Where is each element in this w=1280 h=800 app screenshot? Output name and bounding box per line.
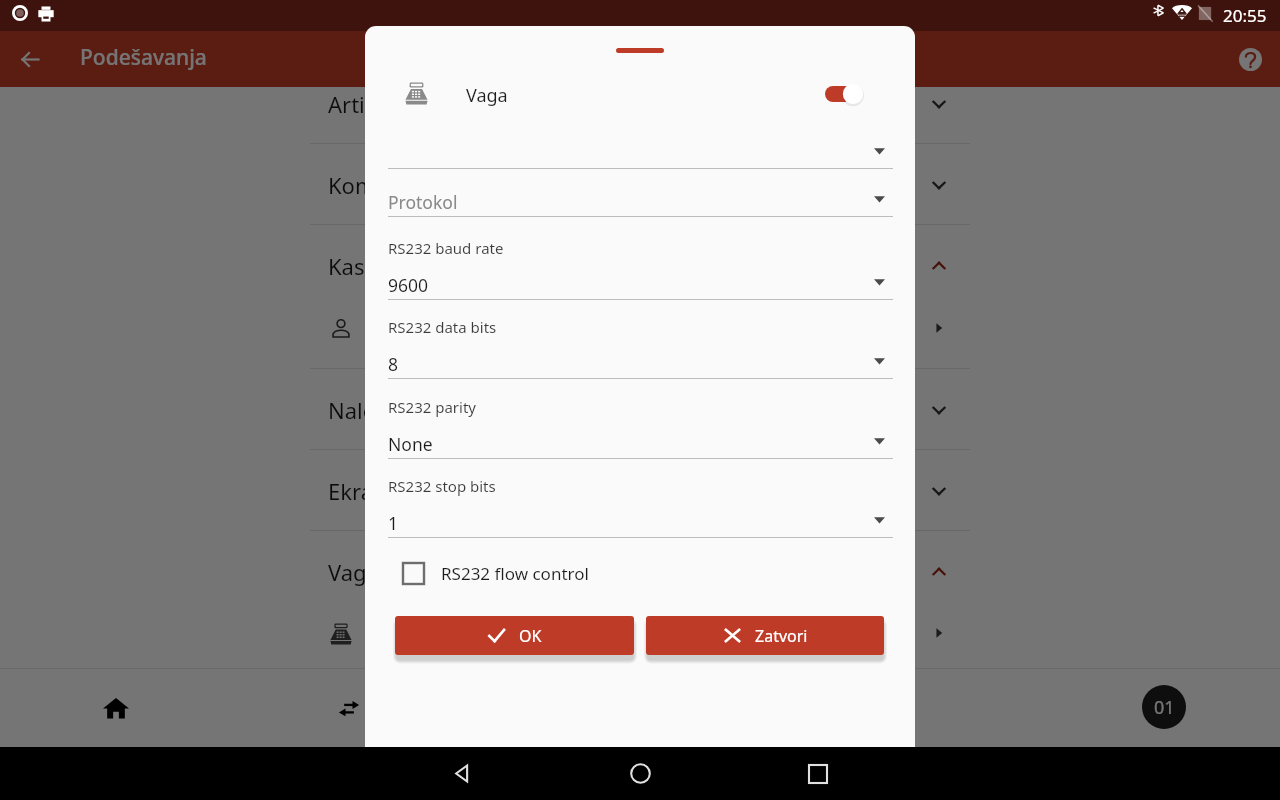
button[interactable]: Kasa	[310, 225, 970, 306]
button[interactable]: Vaga	[310, 531, 970, 612]
staticText: 8	[388, 352, 399, 376]
staticText: Nalog	[328, 395, 390, 425]
staticText: Protokol	[388, 190, 458, 214]
staticText: Kompanija	[328, 170, 439, 200]
button[interactable]	[388, 396, 893, 458]
staticText: RS232 stop bits	[388, 476, 496, 496]
staticText: RS232 baud rate	[388, 238, 504, 258]
button[interactable]	[310, 612, 970, 668]
button[interactable]: Help	[1230, 39, 1270, 79]
staticText: Ekran	[328, 476, 387, 506]
button[interactable]: Ekran	[310, 450, 970, 531]
button[interactable]: Nalog	[310, 369, 970, 450]
staticText: None	[388, 432, 433, 456]
button[interactable]: Home	[92, 684, 140, 732]
button[interactable]	[388, 316, 893, 378]
staticText: Kasa	[328, 251, 377, 281]
button[interactable]: Transfer	[325, 684, 373, 732]
staticText: Zatvori	[755, 625, 808, 647]
button[interactable]: 01	[1142, 685, 1186, 729]
staticText: Podešavanja	[80, 43, 207, 72]
button[interactable]	[388, 475, 893, 537]
button[interactable]: OK	[395, 616, 634, 655]
staticText: RS232 data bits	[388, 317, 497, 337]
staticText: Vaga	[328, 557, 379, 587]
staticText: Vaga	[466, 83, 508, 108]
button[interactable]: Recents	[729, 747, 907, 800]
staticText: 20:55	[1223, 4, 1267, 27]
staticText: 1	[388, 511, 399, 535]
button[interactable]: Home	[551, 747, 729, 800]
button[interactable]	[310, 306, 970, 369]
button[interactable]: Zatvori	[646, 616, 884, 655]
button[interactable]: Artikli	[310, 88, 970, 144]
button[interactable]	[388, 106, 893, 168]
staticText: Artikli	[328, 89, 388, 119]
staticText: OK	[519, 625, 542, 647]
button[interactable]: Enable scale	[817, 78, 867, 110]
button[interactable]: Back	[10, 39, 50, 79]
staticText: 9600	[388, 273, 429, 297]
button[interactable]: RS232 flow control	[403, 555, 655, 591]
staticText: RS232 flow control	[441, 562, 589, 585]
button[interactable]	[388, 154, 893, 216]
button[interactable]	[388, 237, 893, 299]
staticText: 01	[1154, 695, 1175, 720]
staticText: RS232 parity	[388, 397, 476, 417]
button[interactable]: Kompanija	[310, 144, 970, 225]
button[interactable]: Back	[373, 747, 551, 800]
